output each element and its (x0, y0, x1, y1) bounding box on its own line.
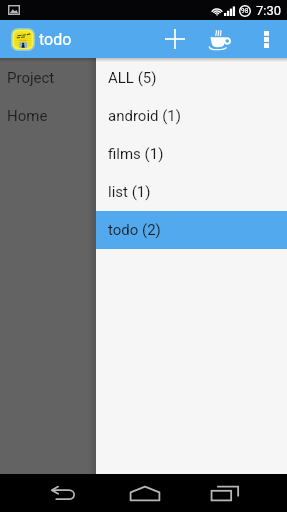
button[interactable]: ALL (5) (96, 59, 287, 97)
button[interactable]: Add (158, 20, 192, 58)
staticText: ALL (5) (108, 69, 157, 87)
button[interactable]: Home (115, 474, 175, 512)
button[interactable]: More options (253, 20, 279, 58)
button[interactable]: Home (0, 97, 96, 135)
button[interactable]: Recents (195, 474, 255, 512)
staticText: android (1) (108, 107, 182, 125)
staticText: todo (39, 30, 72, 49)
button[interactable]: Coffee (203, 20, 237, 58)
staticText: films (1) (108, 145, 164, 163)
button[interactable]: todo (2) (96, 211, 287, 249)
staticText: Home (7, 107, 48, 125)
button[interactable]: Project (0, 59, 96, 97)
staticText: 7:30 (256, 3, 282, 18)
button[interactable]: android (1) (96, 97, 287, 135)
button[interactable]: list (1) (96, 173, 287, 211)
button[interactable]: Back (33, 474, 93, 512)
staticText: 98 (241, 7, 249, 15)
button[interactable]: films (1) (96, 135, 287, 173)
staticText: Project (7, 69, 55, 87)
staticText: list (1) (108, 183, 151, 201)
staticText: todo (2) (108, 221, 161, 239)
